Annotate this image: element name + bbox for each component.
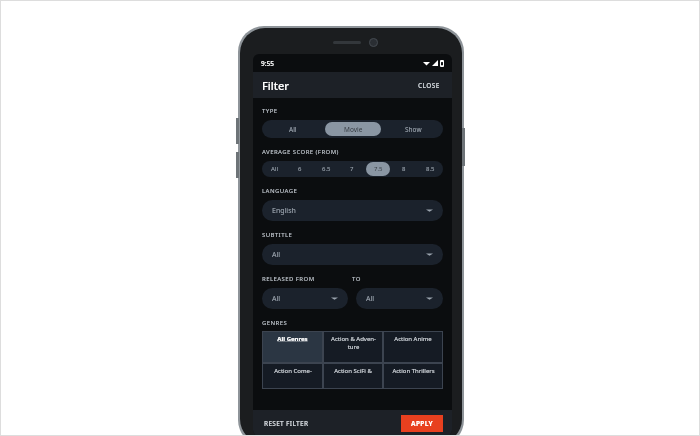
button[interactable]: 7.5	[366, 162, 390, 176]
staticText: Show	[405, 125, 422, 134]
button[interactable]: 6.5	[314, 162, 338, 176]
button[interactable]: Action Anime	[383, 331, 443, 363]
staticText: LANGUAGE	[262, 187, 298, 195]
button[interactable]: Action & Adven- ture	[323, 331, 383, 363]
staticText: Movie	[344, 125, 363, 134]
staticText: RELEASED FROM	[262, 275, 352, 283]
staticText: AVERAGE SCORE (FROM)	[262, 148, 339, 156]
button[interactable]: Action SciFi &	[323, 363, 383, 389]
staticText: 9:55	[261, 59, 274, 68]
button[interactable]: RESET FILTER	[262, 417, 311, 430]
staticText: SUBTITLE	[262, 231, 293, 239]
button[interactable]: Show	[385, 122, 441, 136]
button[interactable]: All	[356, 288, 443, 309]
staticText: Filter	[262, 78, 289, 93]
staticText: Action Thrillers	[392, 367, 435, 375]
staticText: Action & Adven- ture	[331, 335, 376, 351]
staticText: All	[272, 294, 281, 304]
button[interactable]: Movie	[325, 122, 381, 136]
button[interactable]: 7	[340, 162, 364, 176]
staticText: TYPE	[262, 107, 278, 115]
button[interactable]: All	[263, 162, 286, 176]
staticText: All Genres	[277, 335, 308, 343]
staticText: 6.5	[322, 165, 331, 173]
staticText: CLOSE	[418, 81, 440, 90]
staticText: 8.5	[426, 165, 435, 173]
button[interactable]: 8.5	[418, 162, 442, 176]
staticText: English	[272, 206, 296, 216]
button[interactable]: All Genres	[262, 331, 323, 363]
staticText: RESET FILTER	[264, 419, 309, 428]
button[interactable]: Action Come-	[262, 363, 323, 389]
staticText: Action SciFi &	[334, 367, 372, 375]
button[interactable]: 8	[392, 162, 416, 176]
staticText: 7.5	[374, 165, 383, 173]
button[interactable]: 6	[288, 162, 312, 176]
button[interactable]: APPLY	[401, 415, 443, 432]
staticText: Action Come-	[274, 367, 312, 375]
staticText: 7	[350, 165, 354, 173]
button[interactable]: All	[262, 288, 348, 309]
button[interactable]: Action Thrillers	[383, 363, 443, 389]
button[interactable]: CLOSE	[415, 78, 443, 93]
staticText: Action Anime	[394, 335, 432, 343]
button[interactable]: All	[262, 244, 443, 265]
staticText: APPLY	[411, 419, 434, 428]
staticText: 8	[402, 165, 406, 173]
staticText: All	[271, 165, 278, 173]
staticText: GENRES	[262, 319, 288, 327]
button[interactable]: All	[264, 122, 321, 136]
staticText: 6	[298, 165, 302, 173]
staticText: All	[366, 294, 375, 304]
button[interactable]: English	[262, 200, 443, 221]
staticText: All	[289, 125, 297, 134]
staticText: TO	[352, 275, 443, 283]
staticText: All	[272, 250, 281, 260]
